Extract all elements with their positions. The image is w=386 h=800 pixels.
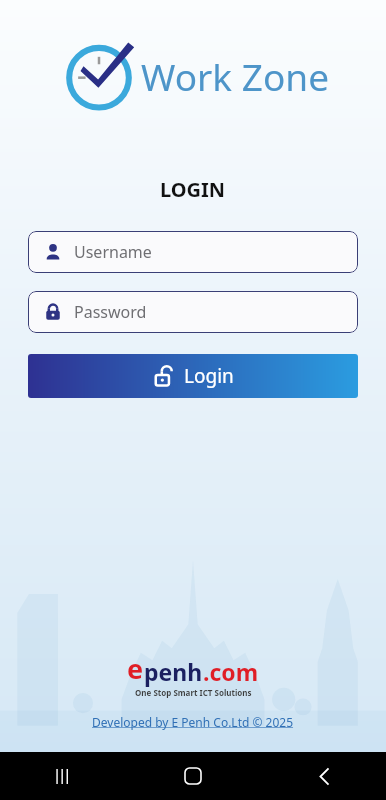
staticText: penh — [144, 656, 203, 687]
staticText: Password — [74, 301, 147, 323]
staticText: LOGIN — [160, 176, 226, 203]
staticText: .com — [203, 656, 259, 687]
button[interactable]: Login — [28, 354, 358, 398]
button[interactable]: Username — [28, 231, 358, 273]
staticText: Login — [184, 363, 234, 389]
button[interactable]: Password — [28, 291, 358, 333]
staticText: Username — [74, 241, 152, 263]
button[interactable]: Home — [173, 756, 213, 796]
button[interactable]: Developed by E Penh Co.Ltd © 2025 — [92, 714, 294, 730]
button[interactable]: Recents — [42, 756, 82, 796]
staticText: Developed by E Penh Co.Ltd © 2025 — [92, 714, 294, 730]
staticText: Work Zone — [141, 51, 329, 101]
button[interactable]: Back — [304, 756, 344, 796]
staticText: One Stop Smart ICT Solutions — [135, 687, 252, 698]
staticText: e — [127, 650, 144, 687]
